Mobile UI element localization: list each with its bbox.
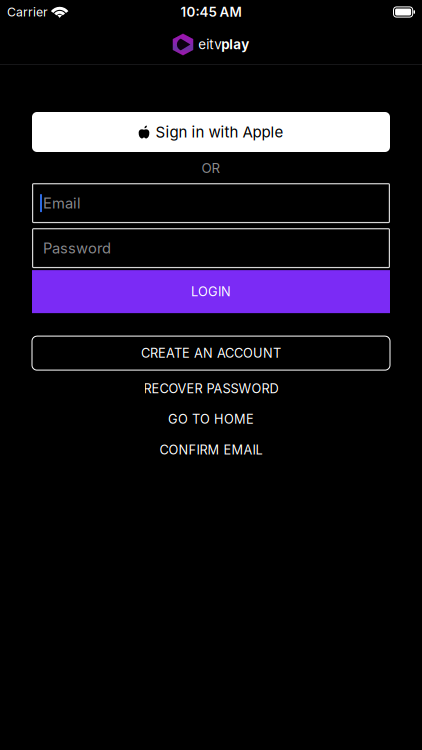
button[interactable]: LOGIN <box>32 270 390 313</box>
staticText: LOGIN <box>191 284 231 299</box>
button[interactable]: RECOVER PASSWORD <box>32 373 390 404</box>
button[interactable]: CONFIRM EMAIL <box>32 434 390 465</box>
button[interactable]: Sign in with Apple <box>32 112 390 152</box>
button[interactable]: GO TO HOME <box>32 404 390 434</box>
staticText: RECOVER PASSWORD <box>143 381 278 396</box>
staticText: eitv <box>198 36 221 52</box>
staticText: Password <box>43 239 111 257</box>
staticText: CONFIRM EMAIL <box>159 442 262 458</box>
button[interactable]: CREATE AN ACCOUNT <box>32 336 390 370</box>
staticText: Carrier <box>7 5 48 19</box>
staticText: Sign in with Apple <box>155 123 283 141</box>
staticText: OR <box>201 160 220 176</box>
staticText: GO TO HOME <box>168 411 254 427</box>
staticText: CREATE AN ACCOUNT <box>141 345 281 361</box>
staticText: 10:45 AM <box>180 4 241 20</box>
staticText: play <box>221 36 249 52</box>
staticText: Email <box>43 194 81 212</box>
